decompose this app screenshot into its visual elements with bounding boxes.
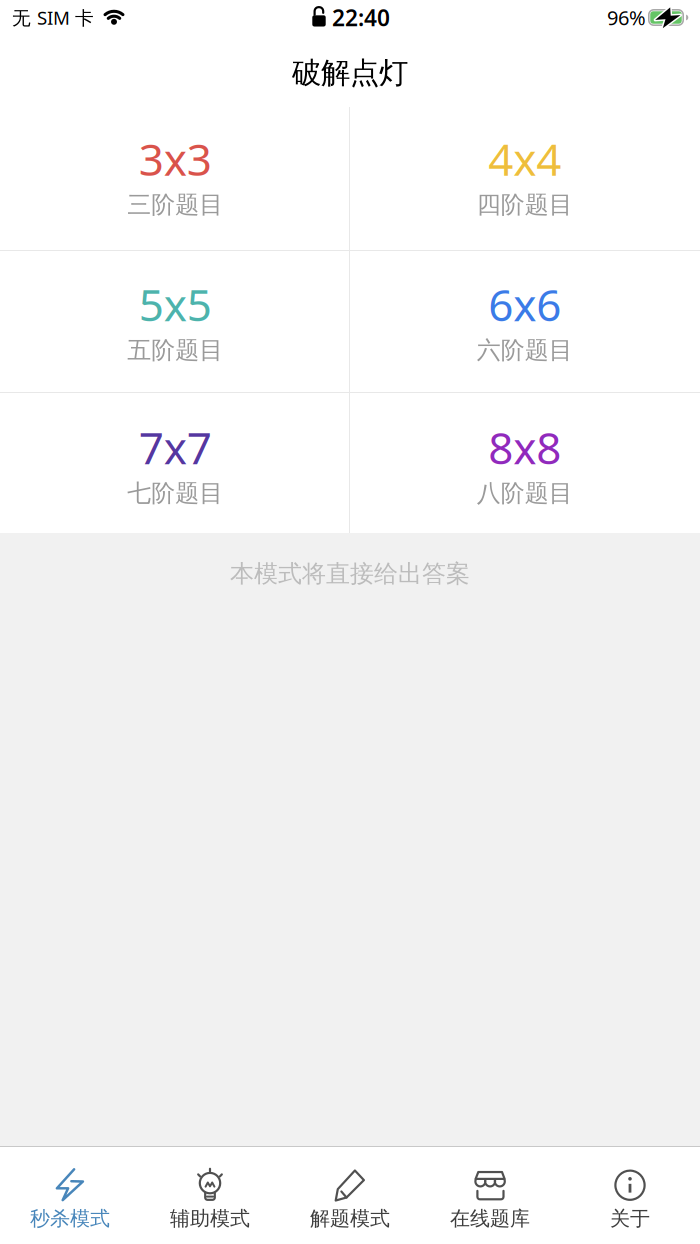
staticText: 6x6: [488, 275, 561, 333]
button[interactable]: 5x5: [0, 251, 350, 392]
staticText: 五阶题目: [127, 335, 223, 365]
button[interactable]: 辅助模式: [140, 1147, 280, 1244]
staticText: 22:40: [332, 2, 390, 32]
staticText: 96%: [607, 4, 646, 31]
button[interactable]: 6x6: [350, 251, 699, 392]
staticText: 破解点灯: [292, 55, 408, 91]
staticText: 8x8: [488, 418, 561, 476]
button[interactable]: 7x7: [0, 393, 350, 533]
staticText: 5x5: [139, 275, 212, 333]
staticText: 辅助模式: [170, 1206, 250, 1231]
button[interactable]: 在线题库: [420, 1147, 560, 1244]
staticText: 秒杀模式: [30, 1206, 110, 1231]
staticText: 在线题库: [450, 1206, 530, 1231]
staticText: 本模式将直接给出答案: [230, 559, 470, 588]
button[interactable]: 4x4: [350, 107, 699, 250]
staticText: 八阶题目: [477, 478, 573, 508]
button[interactable]: 关于: [560, 1147, 700, 1244]
staticText: 3x3: [139, 129, 212, 188]
button[interactable]: 3x3: [0, 107, 350, 250]
staticText: 关于: [610, 1206, 650, 1231]
staticText: 无 SIM 卡: [12, 5, 94, 30]
staticText: 七阶题目: [127, 478, 223, 508]
button[interactable]: 8x8: [350, 393, 699, 533]
staticText: 三阶题目: [127, 190, 223, 219]
staticText: 解题模式: [310, 1206, 390, 1231]
staticText: 7x7: [139, 418, 212, 476]
staticText: 4x4: [488, 129, 561, 188]
button[interactable]: 解题模式: [280, 1147, 420, 1244]
button[interactable]: 秒杀模式: [0, 1147, 140, 1244]
staticText: 六阶题目: [477, 335, 573, 365]
staticText: 四阶题目: [477, 190, 573, 219]
